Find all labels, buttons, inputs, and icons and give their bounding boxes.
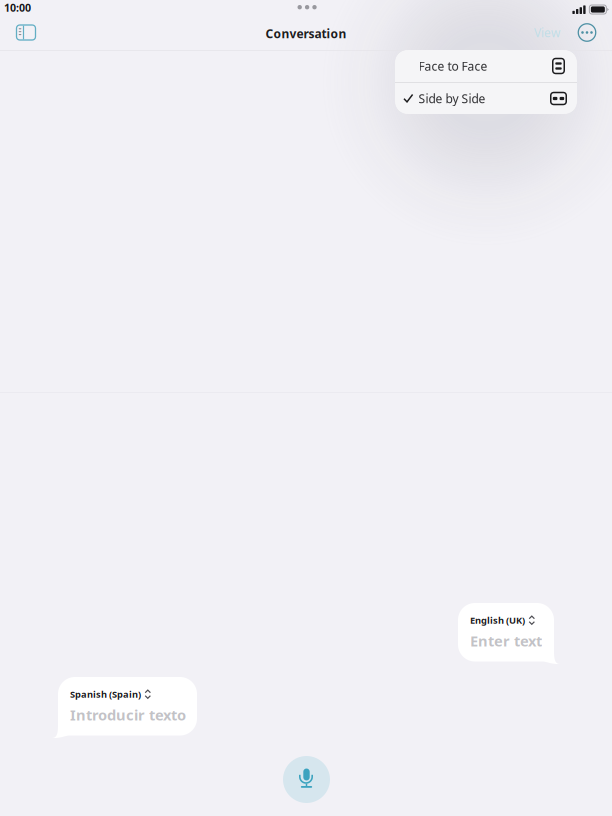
button[interactable]: Face to Face [395,50,577,82]
staticText: View [534,24,560,40]
staticText: Introducir texto [70,705,186,724]
button[interactable]: View [527,17,567,48]
button[interactable]: Start Recording [283,756,330,803]
staticText: Face to Face [418,58,487,74]
staticText: Side by Side [418,90,485,106]
button[interactable]: More options [570,17,604,48]
button[interactable]: Show Sidebar [6,17,46,48]
button[interactable]: Side by Side [395,83,577,114]
staticText: 10:00 [4,0,31,15]
staticText: Conversation [265,25,346,41]
staticText: Enter text [470,631,542,650]
staticText: Spanish (Spain) [70,688,141,700]
staticText: English (UK) [470,614,525,626]
